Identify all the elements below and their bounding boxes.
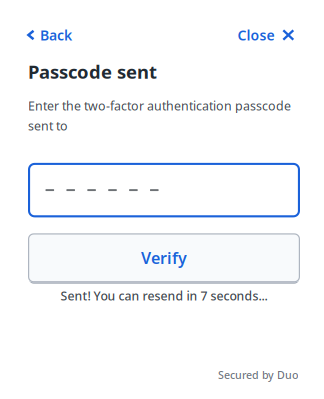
staticText: Passcode sent (28, 59, 157, 84)
staticText: Close (238, 26, 275, 44)
staticText: Back (40, 26, 72, 44)
staticText: Enter the two-factor authentication pass… (28, 97, 291, 134)
staticText: Sent! You can resend in 7 seconds... (60, 288, 267, 304)
button[interactable]: Back (27, 23, 72, 47)
staticText: Verify (141, 247, 187, 268)
button[interactable]: Close (238, 23, 294, 47)
button[interactable]: Verify (28, 233, 300, 284)
staticText: Secured by Duo (218, 368, 299, 382)
